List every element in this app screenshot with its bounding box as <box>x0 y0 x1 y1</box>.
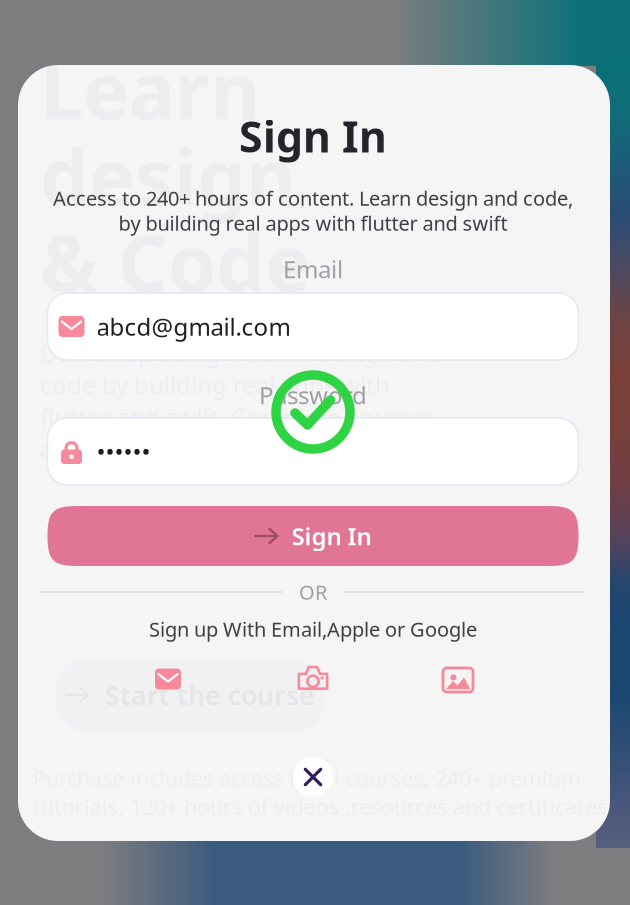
staticText: Access to 240+ hours of content. Learn d… <box>53 185 573 211</box>
staticText: Learn <box>40 38 260 141</box>
staticText: Start the course <box>105 677 315 713</box>
button[interactable]: Sign up with Photos <box>433 660 483 700</box>
staticText: •••••• <box>96 436 150 467</box>
staticText: OR <box>299 579 327 605</box>
staticText: Sign up With Email,Apple or Google <box>149 616 477 642</box>
staticText: Don't skip design. Learn design and code… <box>40 337 443 464</box>
button[interactable]: Sign up with Email <box>143 659 193 699</box>
staticText: abcd@gmail.com <box>96 311 290 342</box>
staticText: Sign In <box>291 520 371 552</box>
staticText: & Code <box>40 210 311 313</box>
staticText: Sign In <box>239 108 387 164</box>
button[interactable]: Close <box>293 757 333 797</box>
staticText: by building real apps with flutter and s… <box>118 210 507 236</box>
button[interactable]: Sign up with Camera <box>288 658 338 698</box>
button[interactable]: Sign In <box>47 506 578 566</box>
staticText: design <box>40 124 296 227</box>
staticText: Purchase includes access to all courses,… <box>33 764 607 821</box>
staticText: Email <box>283 253 343 285</box>
staticText: Password <box>259 379 367 411</box>
